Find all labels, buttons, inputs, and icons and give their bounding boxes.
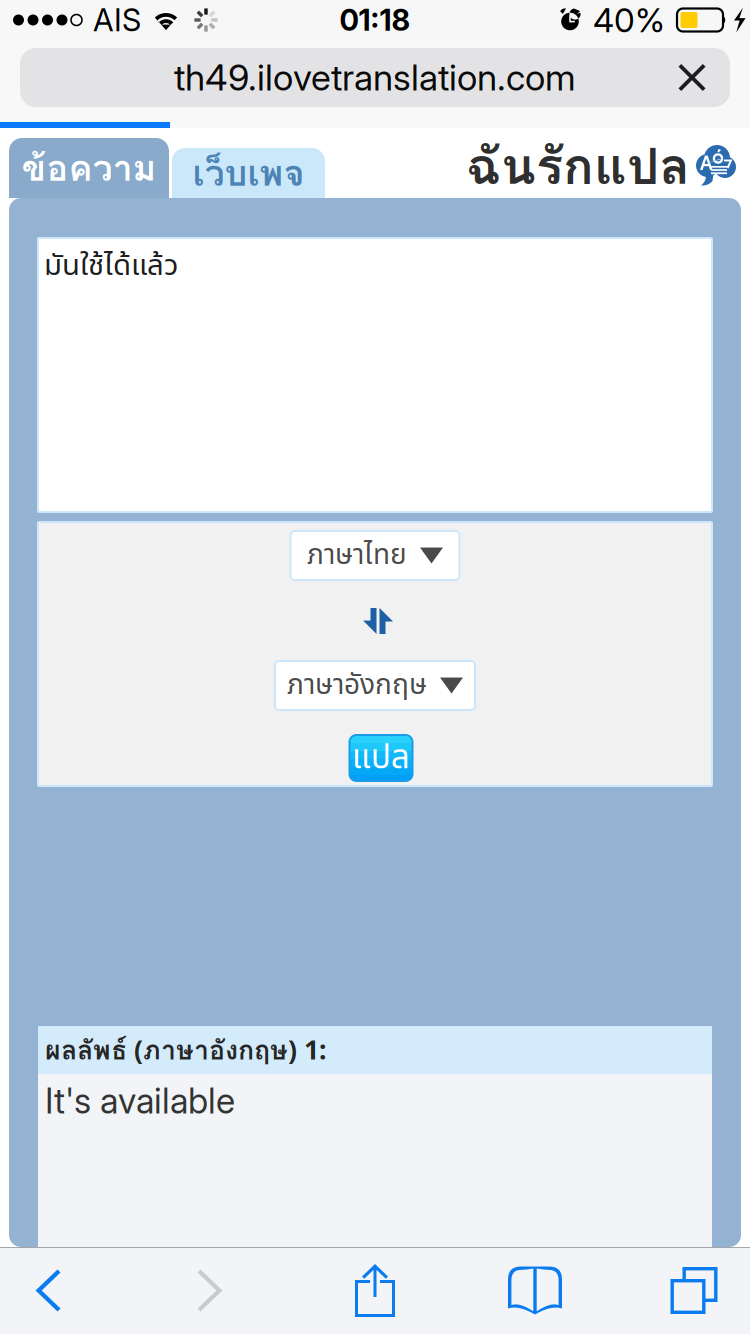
- button[interactable]: Back: [0, 1247, 96, 1334]
- staticText: มันใช้ได้แล้ว: [44, 244, 178, 288]
- button[interactable]: Share: [327, 1247, 423, 1334]
- button[interactable]: Tabs: [646, 1247, 742, 1334]
- button[interactable]: ภาษาไทย: [290, 531, 459, 580]
- staticText: th49.ilovetranslation.com: [174, 56, 576, 99]
- button[interactable]: ภาษาอังกฤษ: [275, 661, 475, 710]
- staticText: แปล: [352, 733, 410, 783]
- staticText: ฉันรักแปล: [466, 126, 690, 206]
- staticText: ข้อความ: [21, 139, 156, 197]
- staticText: AIS: [93, 1, 141, 38]
- button[interactable]: Forward: [162, 1247, 258, 1334]
- staticText: ภาษาไทย: [307, 534, 407, 577]
- staticText: 40%: [593, 0, 665, 40]
- staticText: เว็บเพจ: [192, 144, 304, 202]
- staticText: ผลลัพธ์ (ภาษาอังกฤษ) 1:: [45, 1029, 326, 1071]
- button[interactable]: เว็บเพจ: [172, 148, 325, 198]
- button[interactable]: แปล: [349, 735, 412, 781]
- staticText: ภาษาอังกฤษ: [287, 664, 427, 707]
- button[interactable]: Stop loading: [664, 48, 720, 107]
- button[interactable]: Bookmarks: [487, 1247, 583, 1334]
- button[interactable]: ข้อความ: [9, 138, 169, 198]
- staticText: 01:18: [339, 2, 410, 38]
- staticText: It's available: [45, 1080, 235, 1122]
